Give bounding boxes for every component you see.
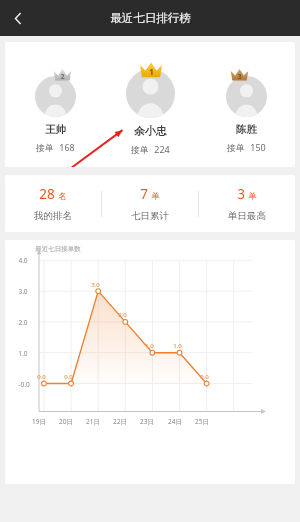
button[interactable]: 1 xyxy=(104,61,196,155)
staticText: 3 xyxy=(237,72,242,82)
staticText: 0.0 xyxy=(37,373,46,381)
staticText: 余小忠 xyxy=(134,124,167,138)
button[interactable]: Back xyxy=(0,0,36,36)
staticText: 3.0 xyxy=(91,281,100,289)
staticText: 名 xyxy=(58,191,67,202)
button[interactable]: 3 xyxy=(199,185,295,222)
staticText: 7 xyxy=(140,185,148,203)
staticText: 接单 xyxy=(36,142,54,153)
staticText: 0.0 xyxy=(64,373,73,381)
staticText: 23日 xyxy=(140,417,154,426)
staticText: 2.0 xyxy=(118,311,127,319)
staticText: 1.0 xyxy=(18,349,28,358)
staticText: 3 xyxy=(237,185,245,203)
staticText: 单日最高 xyxy=(228,210,266,222)
button[interactable]: 3 xyxy=(200,68,292,153)
staticText: 25日 xyxy=(195,417,209,426)
staticText: 1.0 xyxy=(173,342,182,350)
button[interactable]: 2 xyxy=(9,68,101,153)
staticText: 20日 xyxy=(59,417,73,426)
staticText: 28 xyxy=(39,185,55,203)
button[interactable]: 7 xyxy=(102,185,198,222)
staticText: 单 xyxy=(248,191,257,202)
staticText: 最近七日排行榜 xyxy=(110,11,191,25)
staticText: 1.0 xyxy=(145,342,154,350)
staticText: 2 xyxy=(60,72,65,82)
staticText: 我的排名 xyxy=(34,210,72,222)
staticText: 19日 xyxy=(32,417,46,426)
staticText: 0.0 xyxy=(200,373,209,381)
staticText: 单 xyxy=(151,191,160,202)
staticText: 2.0 xyxy=(18,318,28,327)
staticText: 王帅 xyxy=(45,123,66,136)
staticText: 1 xyxy=(149,66,154,78)
staticText: 七日累计 xyxy=(131,210,169,222)
staticText: 3.0 xyxy=(18,287,28,296)
staticText: 22日 xyxy=(113,417,127,426)
staticText: -0.0 xyxy=(18,380,30,389)
button[interactable]: 28 xyxy=(5,185,101,222)
staticText: 21日 xyxy=(86,417,100,426)
staticText: 150 xyxy=(250,141,266,153)
staticText: 接单 xyxy=(131,144,149,155)
staticText: 最近七日接单数 xyxy=(35,245,81,253)
staticText: 24日 xyxy=(168,417,182,426)
staticText: 224 xyxy=(154,143,170,155)
staticText: 4.0 xyxy=(18,256,28,265)
staticText: 接单 xyxy=(227,142,245,153)
staticText: 陈胜 xyxy=(236,123,257,136)
staticText: 168 xyxy=(59,141,75,153)
